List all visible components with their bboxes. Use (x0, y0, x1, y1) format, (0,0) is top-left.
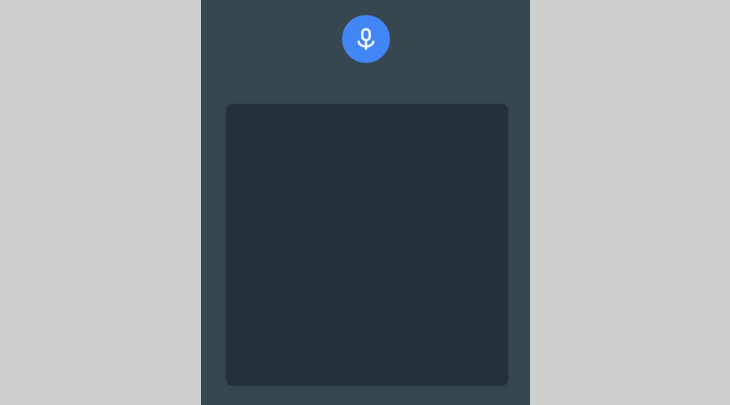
button[interactable]: Voice search (342, 15, 390, 63)
